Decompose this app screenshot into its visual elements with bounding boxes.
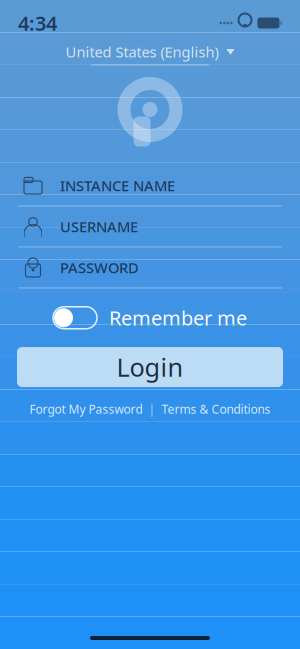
button[interactable]: United States (English)	[65, 34, 234, 65]
button[interactable]: Login	[17, 347, 283, 387]
button[interactable]: INSTANCE NAME	[0, 165, 300, 205]
button[interactable]: PASSWORD	[0, 247, 300, 287]
staticText: USERNAME	[60, 217, 138, 236]
button[interactable]: Forgot My Password	[23, 397, 148, 421]
staticText: PASSWORD	[60, 258, 139, 277]
button[interactable]: Terms & Conditions	[155, 397, 276, 421]
staticText: |	[148, 401, 155, 417]
staticText: Login	[116, 350, 183, 384]
staticText: 4:34	[18, 10, 57, 36]
staticText: Remember me	[109, 304, 247, 331]
staticText: Terms & Conditions	[161, 401, 270, 417]
button[interactable]: USERNAME	[0, 206, 300, 246]
staticText: United States (English)	[65, 42, 218, 61]
staticText: INSTANCE NAME	[60, 176, 175, 195]
staticText: Forgot My Password	[29, 401, 142, 417]
button[interactable]: Remember me	[53, 288, 247, 331]
